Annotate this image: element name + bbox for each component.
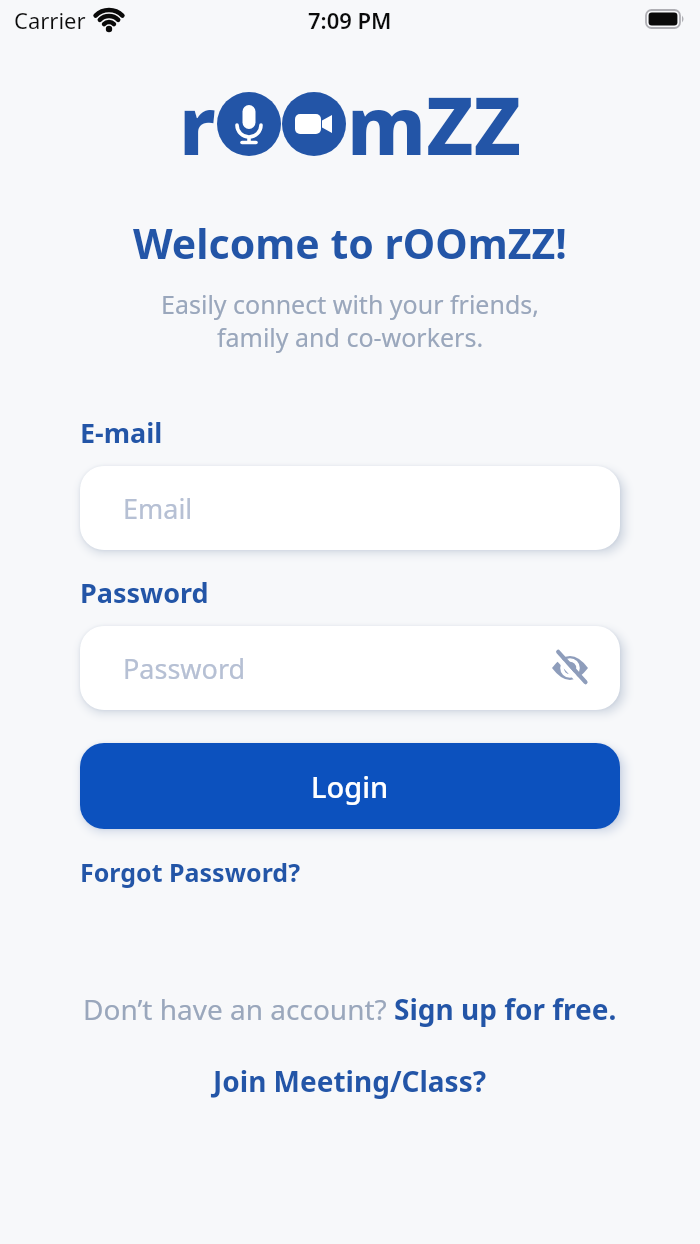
staticText: Carrier — [14, 5, 86, 35]
staticText: Login — [311, 767, 389, 806]
button[interactable]: Email — [80, 466, 620, 550]
staticText: E-mail — [80, 414, 163, 451]
staticText: Easily connect with your friends, family… — [161, 287, 539, 354]
button[interactable]: Forgot Password? — [80, 855, 301, 889]
staticText: m — [347, 69, 426, 178]
button[interactable]: Login — [80, 743, 620, 829]
staticText: Email — [123, 490, 193, 527]
staticText: Welcome to rOOmZZ! — [133, 215, 567, 265]
staticText: r — [179, 69, 216, 178]
staticText: ZZ — [426, 69, 522, 178]
staticText: Password — [123, 650, 246, 687]
button[interactable]: Join Meeting/Class? — [213, 1062, 487, 1100]
button[interactable]: Password — [80, 626, 620, 710]
staticText: Don’t have an account? — [83, 990, 394, 1028]
staticText: Password — [80, 574, 209, 611]
staticText: 7:09 PM — [308, 5, 392, 35]
button[interactable]: Sign up for free. — [394, 990, 617, 1028]
